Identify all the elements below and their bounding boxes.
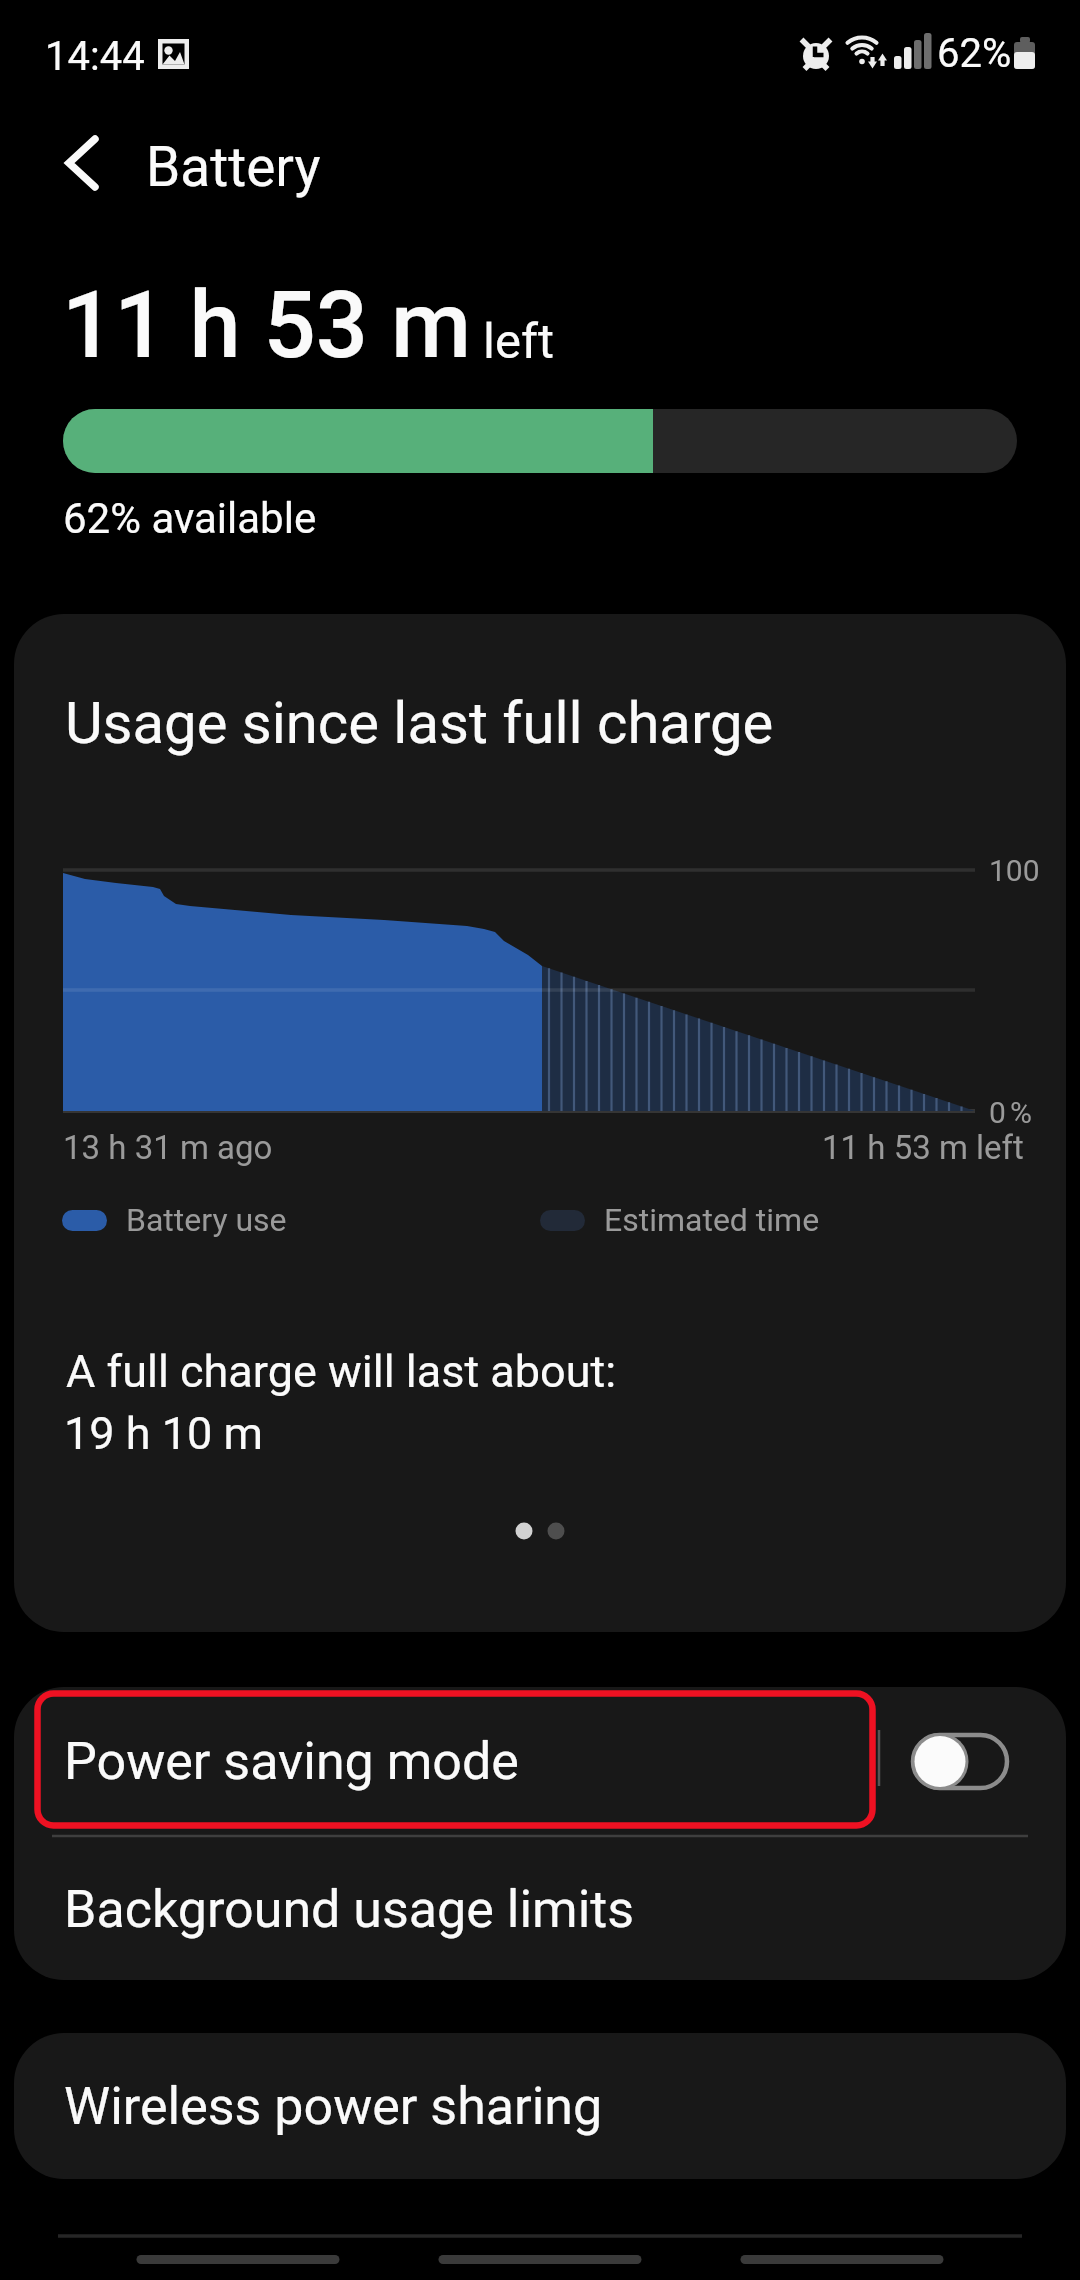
staticText: left	[483, 313, 554, 370]
staticText: Estimated time	[604, 1201, 820, 1239]
staticText: 100	[989, 853, 1040, 888]
button[interactable]: Navigate up	[20, 108, 130, 218]
button[interactable]: Background usage limits	[14, 1838, 1066, 1980]
button[interactable]: Power saving mode	[14, 1687, 1066, 1836]
staticText: 14:44	[45, 33, 145, 80]
button[interactable]: Power saving mode switch, off	[911, 1733, 1009, 1790]
staticText: 62% available	[63, 494, 317, 543]
staticText: Background usage limits	[64, 1879, 635, 1940]
staticText: 13 h 31 m ago	[63, 1128, 273, 1167]
staticText: 0	[989, 1095, 1006, 1130]
staticText: Usage since last full charge	[65, 689, 774, 757]
button[interactable]: Wireless power sharing	[14, 2033, 1066, 2179]
staticText: Power saving mode	[64, 1731, 519, 1792]
staticText: 62%	[937, 30, 1012, 77]
staticText: 19 h 10 m	[64, 1407, 263, 1460]
staticText: A full charge will last about:	[66, 1345, 617, 1398]
staticText: Battery use	[126, 1201, 287, 1239]
staticText: 11 h 53 m	[62, 272, 472, 380]
staticText: %	[1010, 1095, 1032, 1130]
staticText: Battery	[146, 135, 321, 199]
staticText: Wireless power sharing	[64, 2076, 603, 2137]
staticText: 11 h 53 m left	[822, 1128, 1024, 1167]
